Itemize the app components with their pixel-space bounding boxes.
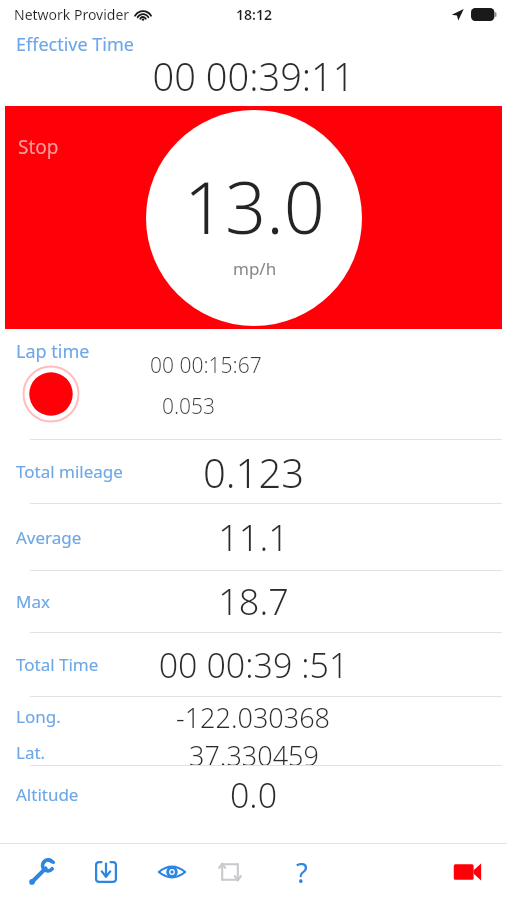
staticText: 13.0	[184, 157, 325, 255]
staticText: Effective Time	[16, 32, 134, 57]
button[interactable]: Save	[84, 850, 128, 894]
staticText: -122.030368	[176, 699, 331, 736]
button[interactable]: Total mileage	[0, 440, 507, 503]
staticText: 11.1	[0, 513, 507, 562]
button[interactable]: View	[150, 850, 194, 894]
button[interactable]: Stop	[5, 106, 502, 329]
staticText: 37.330459	[189, 737, 319, 765]
button[interactable]: Lap	[22, 365, 80, 423]
button[interactable]: Average	[0, 504, 507, 570]
staticText: Total Time	[16, 653, 99, 676]
staticText: 18:12	[236, 5, 272, 24]
staticText: Lap time	[16, 339, 90, 364]
button[interactable]: Total Time	[0, 633, 507, 696]
staticText: 00 00:39 :51	[0, 642, 507, 688]
button[interactable]: Max	[0, 571, 507, 632]
button[interactable]: Altitude	[0, 766, 507, 823]
staticText: Network Provider	[14, 5, 130, 24]
staticText: mp/h	[233, 257, 277, 280]
button[interactable]: Settings	[20, 850, 64, 894]
staticText: 0.053	[162, 392, 216, 421]
staticText: 00 00:39:11	[0, 50, 507, 102]
staticText: Average	[16, 526, 82, 549]
staticText: 00 00:15:67	[150, 351, 262, 380]
staticText: Altitude	[16, 783, 79, 806]
staticText: Total mileage	[16, 460, 123, 483]
button[interactable]: Long.	[0, 697, 507, 765]
staticText: 18.7	[0, 577, 507, 626]
button[interactable]: Record video	[445, 850, 489, 894]
button[interactable]: Refresh	[208, 850, 252, 894]
staticText: 0.0	[0, 772, 507, 818]
button[interactable]: Help	[280, 850, 324, 894]
staticText: Max	[16, 590, 50, 613]
staticText: 0.123	[0, 445, 507, 499]
staticText: Stop	[18, 134, 59, 160]
staticText: ?	[296, 854, 308, 891]
staticText: Long.	[16, 705, 61, 728]
staticText: Lat.	[16, 741, 46, 764]
